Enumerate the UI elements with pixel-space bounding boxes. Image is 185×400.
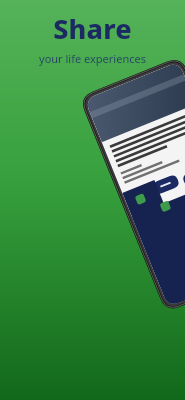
other: App preview on phone bbox=[0, 0, 185, 400]
button[interactable]: your life experiences bbox=[39, 51, 146, 66]
button[interactable]: Share bbox=[53, 10, 132, 47]
